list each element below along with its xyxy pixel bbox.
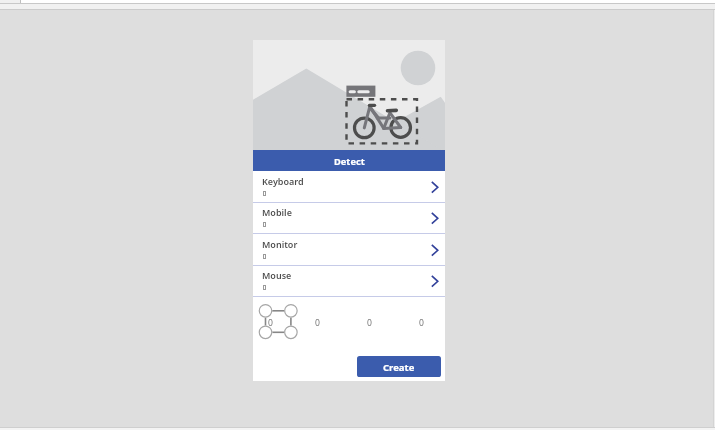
other: Graph (257, 303, 298, 340)
staticText: Keyboard (262, 175, 304, 187)
staticText: 0 (268, 317, 273, 329)
staticText: 0 (315, 317, 320, 329)
staticText: Create (383, 361, 415, 374)
button[interactable]: Keyboard (253, 171, 445, 202)
button[interactable]: Mouse (253, 265, 445, 296)
button[interactable]: Detect (253, 150, 445, 171)
button[interactable]: Monitor (253, 234, 445, 265)
button[interactable]: Mobile (253, 202, 445, 233)
button[interactable]: Create (357, 356, 441, 377)
staticText: Mouse (262, 269, 292, 281)
staticText: 0 (419, 317, 424, 329)
staticText: 0 (367, 317, 372, 329)
staticText: Mobile (262, 206, 292, 218)
staticText: Detect (334, 155, 365, 168)
staticText: Monitor (262, 238, 298, 250)
